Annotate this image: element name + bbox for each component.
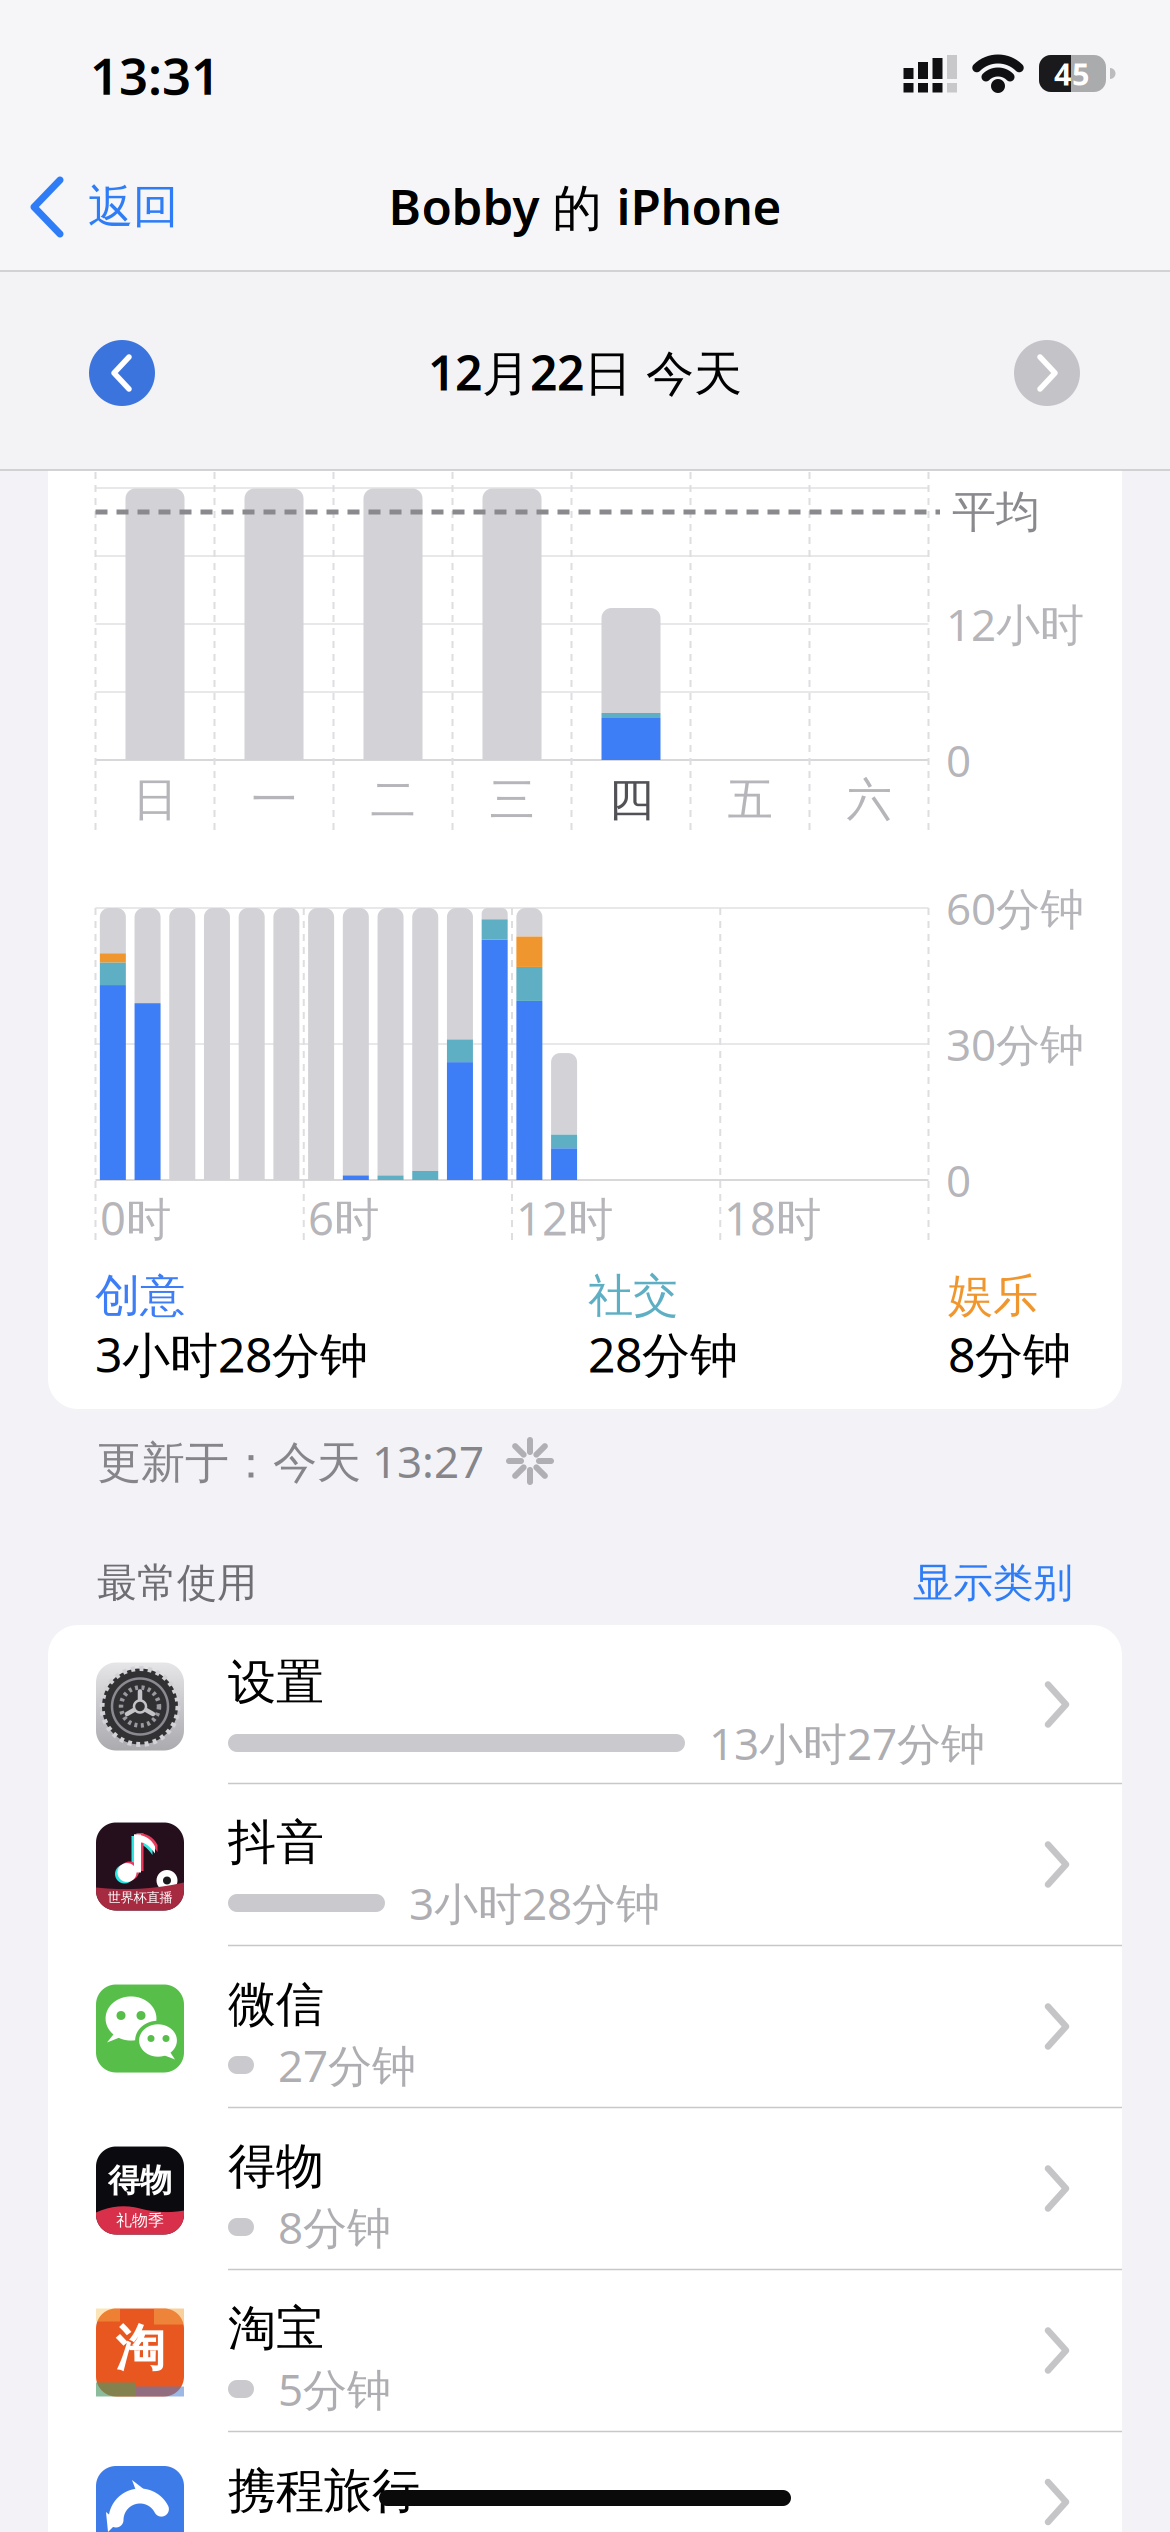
staticText: 12小时	[946, 595, 1084, 653]
staticText: 淘宝	[228, 2299, 324, 2358]
staticText: 返回	[88, 179, 178, 235]
button[interactable]: 返回	[0, 0, 230, 90]
staticText: 一	[251, 772, 296, 828]
staticText: 创意	[95, 1268, 185, 1324]
staticText: 28分钟	[588, 1322, 738, 1386]
button[interactable]: 微信	[48, 1946, 1122, 2107]
staticText: 13:31	[90, 41, 220, 109]
staticText: 0时	[100, 1188, 171, 1248]
staticText: 得物	[108, 2161, 172, 2200]
button[interactable]: 显示类别	[673, 1558, 1073, 1607]
staticText: Bobby 的 iPhone	[388, 173, 781, 239]
staticText: 淘	[115, 2318, 164, 2379]
staticText: 设置	[228, 1653, 324, 1712]
button[interactable]: 携程旅行	[48, 2431, 1122, 2532]
staticText: 显示类别	[913, 1558, 1073, 1607]
staticText: 六	[846, 772, 891, 828]
staticText: 社交	[588, 1268, 678, 1324]
staticText: 3小时28分钟	[409, 1874, 660, 1932]
staticText: 携程旅行	[228, 2461, 420, 2520]
staticText: 27分钟	[278, 2036, 416, 2094]
staticText: 5分钟	[278, 2360, 391, 2418]
staticText: 0	[946, 1151, 971, 1209]
staticText: 二	[370, 772, 415, 828]
staticText: 世界杯直播	[107, 1889, 172, 1906]
staticText: 18时	[724, 1188, 821, 1248]
button[interactable]: 设置	[48, 1624, 1122, 1785]
staticText: 微信	[228, 1975, 324, 2034]
staticText: 得物	[228, 2137, 324, 2196]
button[interactable]: 淘	[48, 2270, 1122, 2431]
staticText: 五	[727, 772, 772, 828]
staticText: 13小时27分钟	[709, 1714, 985, 1772]
staticText: 三	[489, 772, 534, 828]
staticText: 更新于：今天 13:27	[97, 1432, 484, 1490]
staticText: 最常使用	[97, 1558, 257, 1607]
button[interactable]: 世界杯直播	[48, 1784, 1122, 1945]
staticText: 礼物季	[116, 2211, 164, 2230]
staticText: 6时	[308, 1188, 379, 1248]
staticText: 60分钟	[946, 879, 1084, 937]
staticText: 日	[132, 772, 177, 828]
staticText: 抖音	[228, 1813, 324, 1872]
staticText: 45	[1054, 53, 1090, 94]
staticText: 8分钟	[948, 1322, 1071, 1386]
staticText: 娱乐	[948, 1268, 1038, 1324]
staticText: 0	[946, 731, 971, 789]
staticText: 平均	[952, 485, 1040, 539]
button[interactable]: 得物	[48, 2108, 1122, 2269]
staticText: 30分钟	[946, 1015, 1084, 1073]
staticText: 四	[608, 772, 653, 828]
staticText: 3小时28分钟	[95, 1322, 368, 1386]
staticText: 12月22日 今天	[428, 340, 742, 404]
staticText: 12时	[516, 1188, 613, 1248]
staticText: 8分钟	[278, 2198, 391, 2256]
